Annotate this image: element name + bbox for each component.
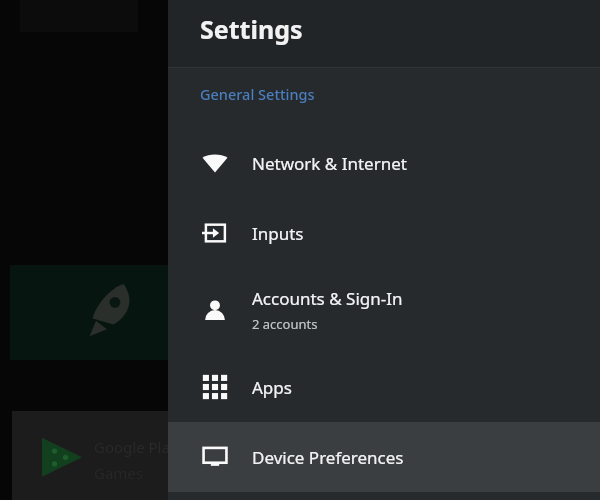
staticText: Device Preferences (252, 446, 404, 469)
staticText: Google Play (94, 437, 178, 457)
button[interactable]: Google Play Games (12, 411, 168, 500)
button[interactable]: Device Preferences (168, 422, 600, 492)
staticText: Accounts & Sign-In (252, 287, 403, 310)
staticText: Network & Internet (252, 152, 407, 175)
button[interactable]: Inputs (168, 198, 600, 268)
staticText: Inputs (252, 222, 304, 245)
button[interactable]: Network & Internet (168, 128, 600, 198)
staticText: 2 accounts (252, 315, 318, 333)
button[interactable]: Accounts & Sign-In (168, 268, 600, 352)
button[interactable]: App (10, 265, 168, 360)
staticText: Apps (252, 376, 292, 399)
staticText: General Settings (200, 84, 315, 104)
staticText: Settings (200, 12, 303, 46)
button[interactable]: Apps (168, 352, 600, 422)
